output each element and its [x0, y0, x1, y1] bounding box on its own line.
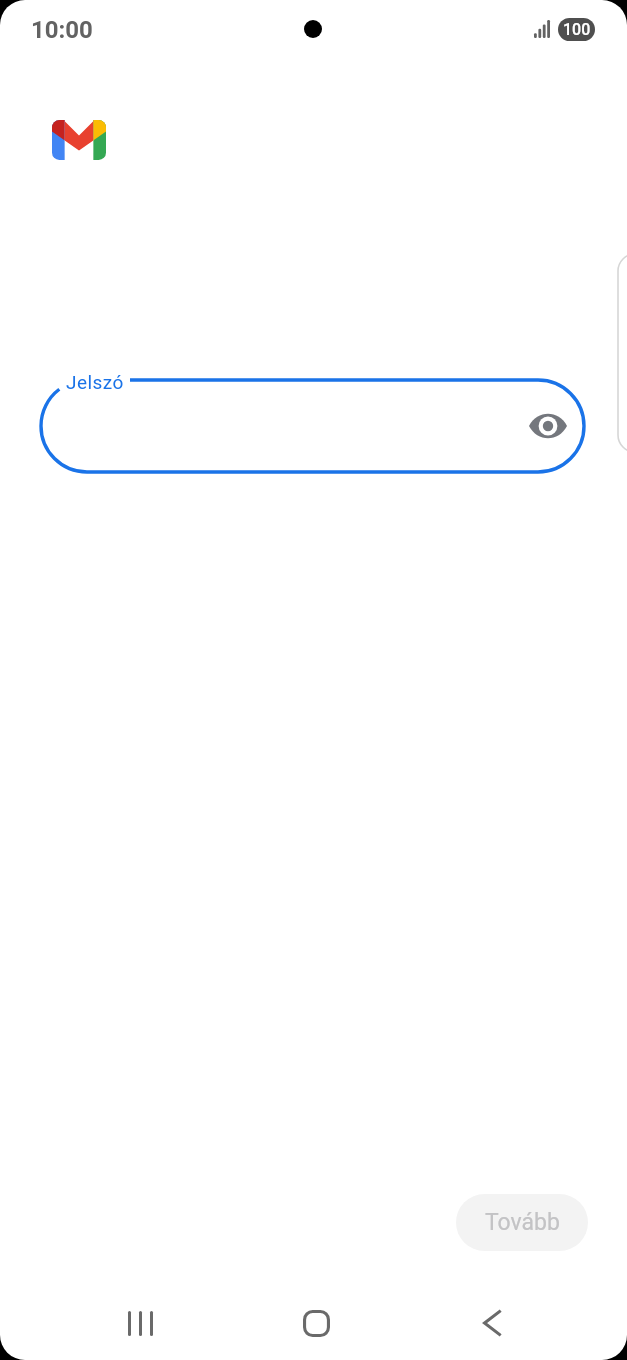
button[interactable]: Jelszó	[35, 374, 590, 478]
staticText: Jelszó	[66, 371, 124, 393]
button[interactable]: Recent apps	[88, 1286, 192, 1360]
staticText: Tovább	[485, 1209, 560, 1236]
button[interactable]: Tovább	[456, 1194, 588, 1251]
staticText: 10:00	[31, 16, 93, 44]
button[interactable]: Back	[440, 1286, 544, 1360]
button[interactable]: Home	[264, 1286, 368, 1360]
staticText: 100	[563, 20, 591, 39]
button[interactable]: Show password	[526, 404, 570, 448]
